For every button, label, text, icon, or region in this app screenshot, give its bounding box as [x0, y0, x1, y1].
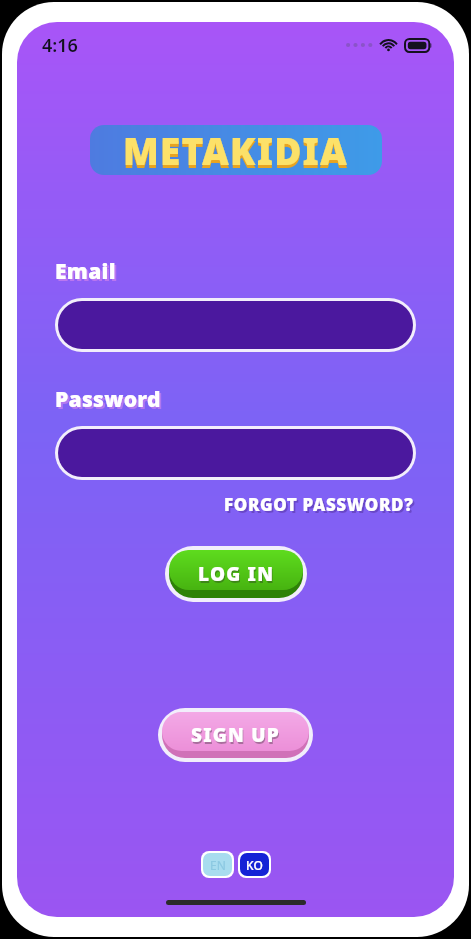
staticText: LOG IN	[198, 561, 275, 587]
staticText: Email	[57, 259, 118, 288]
button[interactable]: EN	[201, 851, 234, 878]
button[interactable]: METAKIDIA	[90, 125, 382, 175]
button[interactable]: SIGN UP	[158, 708, 313, 762]
staticText: FORGOT PASSWORD?	[224, 493, 414, 516]
staticText: Email	[55, 257, 116, 286]
staticText: FORGOT PASSWORD?	[226, 495, 416, 518]
button[interactable]	[55, 298, 416, 352]
button[interactable]: FORGOT PASSWORD?	[222, 491, 416, 518]
staticText: METAKIDIA	[123, 128, 349, 175]
button[interactable]	[55, 426, 416, 480]
button[interactable]: KO	[238, 851, 271, 878]
staticText: METAKIDIA	[123, 125, 349, 175]
staticText: Password	[57, 387, 163, 416]
staticText: Password	[55, 385, 161, 414]
staticText: SIGN UP	[192, 724, 281, 750]
staticText: SIGN UP	[191, 722, 280, 748]
staticText: EN	[210, 857, 226, 873]
staticText: LOG IN	[199, 563, 276, 589]
staticText: KO	[246, 857, 263, 873]
staticText: 4:16	[42, 33, 78, 58]
button[interactable]: LOG IN	[165, 546, 307, 602]
